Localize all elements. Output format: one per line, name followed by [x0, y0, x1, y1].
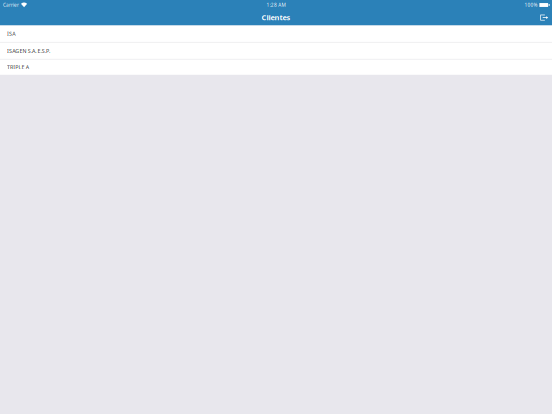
- staticText: ISAGEN S.A. E.S.P.: [7, 47, 50, 54]
- staticText: Clientes: [261, 12, 290, 22]
- staticText: 100%: [524, 2, 537, 8]
- staticText: TRIPLE A: [7, 64, 29, 71]
- button[interactable]: ISAGEN S.A. E.S.P.: [0, 43, 552, 60]
- staticText: 1:28 AM: [266, 2, 285, 8]
- button[interactable]: Log out: [540, 15, 548, 21]
- staticText: Carrier: [3, 2, 19, 8]
- button[interactable]: TRIPLE A: [0, 60, 552, 75]
- staticText: ISA: [7, 30, 15, 37]
- button[interactable]: ISA: [0, 25, 552, 43]
